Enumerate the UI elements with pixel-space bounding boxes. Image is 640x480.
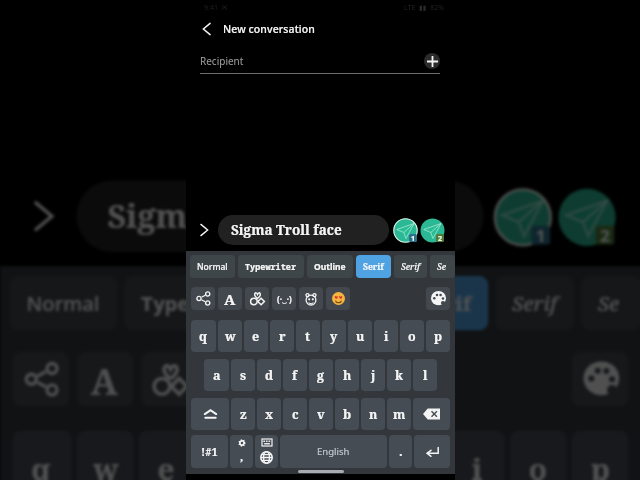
button[interactable]: q [12, 430, 72, 480]
button[interactable]: f [283, 359, 307, 391]
button[interactable]: Send option 2 [420, 218, 445, 243]
button[interactable]: Typewriter [238, 255, 304, 278]
button[interactable]: e [244, 320, 268, 352]
button[interactable]: Send option 2 [557, 188, 617, 247]
staticText: r [222, 449, 238, 480]
staticText: v [317, 406, 325, 423]
button[interactable]: r [200, 430, 257, 480]
staticText: o [408, 328, 416, 345]
button[interactable]: t [262, 430, 319, 480]
staticText: , [240, 449, 244, 464]
button[interactable]: u [386, 430, 443, 480]
button[interactable]: Fonts [218, 287, 242, 310]
staticText: r [279, 328, 286, 345]
button[interactable]: Serif [581, 276, 640, 330]
button[interactable]: d [257, 359, 281, 391]
button[interactable]: w [218, 320, 242, 352]
button[interactable]: Backspace [413, 398, 450, 430]
button[interactable]: Symbols [245, 287, 269, 310]
button[interactable]: q [191, 320, 216, 352]
button[interactable]: Share [191, 287, 215, 310]
button[interactable]: Serif [495, 276, 574, 330]
button[interactable]: p [572, 430, 629, 480]
button[interactable]: w [76, 430, 134, 480]
button[interactable]: Send option 1 [493, 188, 553, 247]
button[interactable]: Symbols [141, 352, 198, 407]
staticText: English [317, 445, 350, 458]
button[interactable]: v [309, 398, 333, 430]
button[interactable]: u [348, 320, 372, 352]
button[interactable]: Settings [230, 435, 253, 468]
staticText: x [265, 406, 274, 423]
button[interactable]: Caps lock [191, 398, 229, 430]
button[interactable]: !#1 [191, 435, 228, 468]
button[interactable]: m [387, 398, 411, 430]
button[interactable]: x [257, 398, 281, 430]
button[interactable]: b [335, 398, 359, 430]
button[interactable]: e [138, 430, 195, 480]
button[interactable]: s [231, 359, 255, 391]
button[interactable]: Serif [430, 255, 455, 278]
staticText: y [330, 328, 338, 345]
button[interactable]: y [322, 320, 346, 352]
button[interactable]: j [361, 359, 385, 391]
staticText: i [472, 449, 483, 480]
button[interactable]: i [374, 320, 398, 352]
staticText: n [369, 406, 378, 423]
button[interactable]: Add recipient [424, 53, 440, 69]
button[interactable]: Fonts [76, 352, 134, 407]
button[interactable]: Outline [307, 255, 353, 278]
button[interactable]: c [283, 398, 307, 430]
staticText: A [224, 289, 236, 309]
staticText: Serif [363, 261, 384, 273]
button[interactable]: Change language [255, 435, 278, 468]
button[interactable]: Expand keyboard [197, 223, 211, 237]
button[interactable]: t [296, 320, 320, 352]
button[interactable]: o [400, 320, 424, 352]
button[interactable]: i [448, 430, 505, 480]
button[interactable]: Stickers [269, 352, 326, 407]
staticText: u [405, 449, 426, 480]
button[interactable]: r [270, 320, 294, 352]
button[interactable]: Enter [414, 435, 450, 468]
button[interactable]: Normal [10, 276, 117, 330]
button[interactable]: Serif [405, 276, 488, 330]
button[interactable]: Sigma Troll face [76, 180, 483, 252]
button[interactable]: n [361, 398, 385, 430]
button[interactable]: Serif [356, 255, 391, 278]
button[interactable]: Send option 1 [393, 218, 418, 243]
staticText: Typewriter [245, 261, 297, 273]
button[interactable]: g [309, 359, 333, 391]
button[interactable]: English [280, 435, 387, 468]
button[interactable]: Kaomoji [272, 287, 296, 310]
button[interactable]: o [510, 430, 567, 480]
button[interactable]: p [426, 320, 450, 352]
button[interactable]: l [413, 359, 437, 391]
button[interactable]: y [324, 430, 381, 480]
button[interactable]: Sigma Troll face [218, 215, 389, 245]
button[interactable]: a [204, 359, 229, 391]
button[interactable]: Typewriter [124, 276, 281, 330]
button[interactable]: Emoji [326, 287, 350, 310]
button[interactable]: k [387, 359, 411, 391]
button[interactable]: Color palette [426, 287, 450, 310]
button[interactable]: Serif [394, 255, 427, 278]
staticText: 9:41 ✉ [204, 3, 228, 12]
button[interactable]: . [389, 435, 412, 468]
button[interactable]: Back [186, 14, 455, 44]
button[interactable]: Kaomoji [205, 352, 262, 407]
staticText: Sigma Troll face [231, 221, 342, 239]
button[interactable]: Normal [190, 255, 235, 278]
staticText: e [157, 449, 176, 480]
staticText: 1 [536, 226, 548, 245]
staticText: New conversation [223, 22, 315, 36]
button[interactable]: Emoji [334, 352, 391, 407]
button[interactable]: Expand keyboard [27, 199, 60, 233]
button[interactable]: z [231, 398, 255, 430]
staticText: o [529, 449, 548, 480]
button[interactable]: Outline [288, 276, 398, 330]
button[interactable]: Stickers [299, 287, 323, 310]
button[interactable]: Color palette [572, 352, 629, 407]
button[interactable]: Share [12, 352, 69, 407]
button[interactable]: h [335, 359, 359, 391]
